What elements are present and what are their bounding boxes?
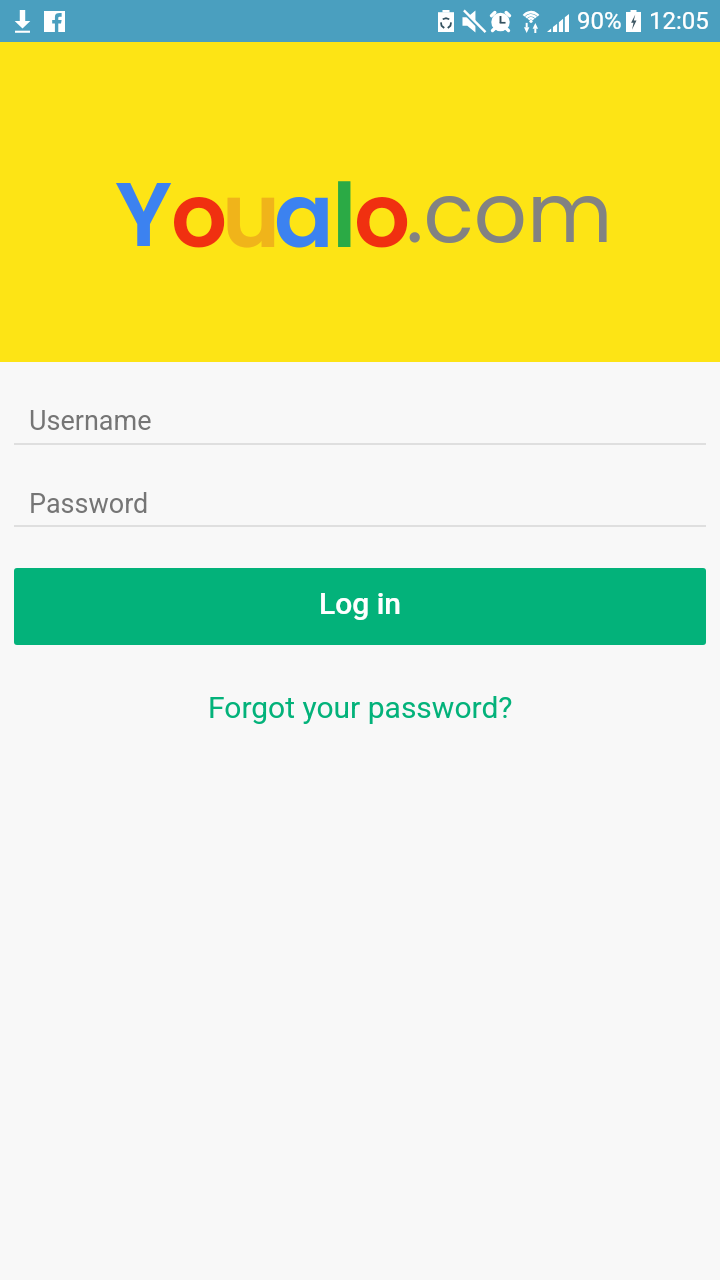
- staticText: Y: [115, 152, 173, 252]
- staticText: Password: [29, 488, 149, 520]
- staticText: Forgot your password?: [208, 690, 513, 725]
- staticText: o: [171, 155, 228, 255]
- staticText: Log in: [319, 586, 402, 621]
- staticText: o: [354, 155, 411, 255]
- button[interactable]: Username: [0, 397, 720, 445]
- staticText: Username: [29, 405, 152, 437]
- button[interactable]: Log in: [14, 568, 706, 645]
- staticText: l: [332, 155, 357, 255]
- staticText: 12:05: [649, 7, 709, 35]
- staticText: a: [274, 155, 334, 255]
- staticText: .com: [406, 155, 613, 255]
- button[interactable]: Forgot your password?: [0, 690, 720, 725]
- staticText: 90%: [577, 7, 622, 35]
- staticText: u: [222, 155, 281, 255]
- button[interactable]: Password: [0, 480, 720, 527]
